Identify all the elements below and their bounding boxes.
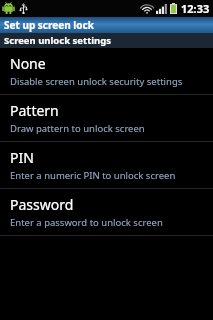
staticText: 12:33	[181, 1, 210, 16]
staticText: Enter a password to unlock screen	[10, 216, 163, 229]
staticText: PIN	[10, 148, 34, 167]
button[interactable]: Password	[0, 189, 213, 235]
staticText: Draw pattern to unlock screen	[10, 122, 145, 135]
staticText: Pattern	[10, 101, 59, 120]
staticText: Enter a numeric PIN to unlock screen	[10, 169, 176, 182]
staticText: None	[10, 54, 46, 73]
button[interactable]: PIN	[0, 142, 213, 188]
staticText: Disable screen unlock security settings	[10, 75, 183, 88]
button[interactable]: None	[0, 48, 213, 94]
staticText: Password	[10, 195, 74, 214]
staticText: Screen unlock settings	[4, 34, 112, 47]
staticText: Set up screen lock	[4, 18, 94, 32]
button[interactable]: Pattern	[0, 95, 213, 141]
